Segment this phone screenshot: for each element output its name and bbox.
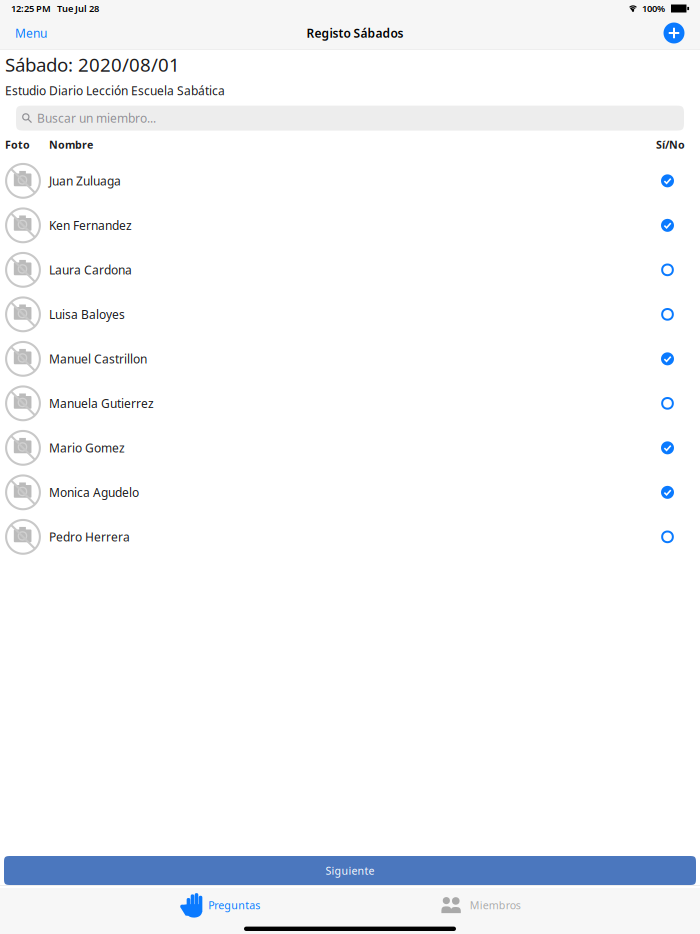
button[interactable]: Ken Fernandez [0,203,700,248]
staticText: Menu [15,25,47,41]
staticText: Sábado: 2020/08/01 [5,52,180,77]
button[interactable]: Manuel Castrillon [0,337,700,381]
button[interactable]: Monica Agudelo [0,470,700,515]
staticText: Manuela Gutierrez [49,395,154,411]
button[interactable]: Buscar un miembro... [16,106,684,131]
staticText: 100% [642,2,665,15]
staticText: Miembros [470,898,521,912]
staticText: 12:25 PM [11,2,51,15]
staticText: Preguntas [208,898,260,912]
staticText: Nombre [49,137,93,152]
button[interactable]: Luisa Baloyes [0,292,700,337]
staticText: Luisa Baloyes [49,306,125,322]
staticText: Ken Fernandez [49,217,132,233]
staticText: Pedro Herrera [49,529,130,545]
staticText: Juan Zuluaga [49,173,121,189]
button[interactable]: Laura Cardona [0,248,700,292]
staticText: Monica Agudelo [49,484,139,500]
staticText: Siguiente [325,863,374,878]
staticText: Mario Gomez [49,440,125,456]
button[interactable]: Miembros [440,892,521,919]
staticText: Manuel Castrillon [49,351,147,367]
staticText: Tue Jul 28 [57,2,99,15]
staticText: Registo Sábados [306,25,403,41]
button[interactable]: Manuela Gutierrez [0,381,700,426]
staticText: Estudio Diario Lección Escuela Sabática [5,83,225,98]
button[interactable]: Preguntas [179,892,260,919]
staticText: Foto [5,137,30,152]
staticText: Laura Cardona [49,262,132,278]
button[interactable]: Add [648,17,700,49]
button[interactable]: Siguiente [4,856,696,885]
button[interactable]: Menu [0,17,62,49]
staticText: Sí/No [656,137,685,152]
staticText: Buscar un miembro... [37,110,156,126]
button[interactable]: Pedro Herrera [0,515,700,559]
button[interactable]: Mario Gomez [0,426,700,470]
button[interactable]: Juan Zuluaga [0,159,700,203]
